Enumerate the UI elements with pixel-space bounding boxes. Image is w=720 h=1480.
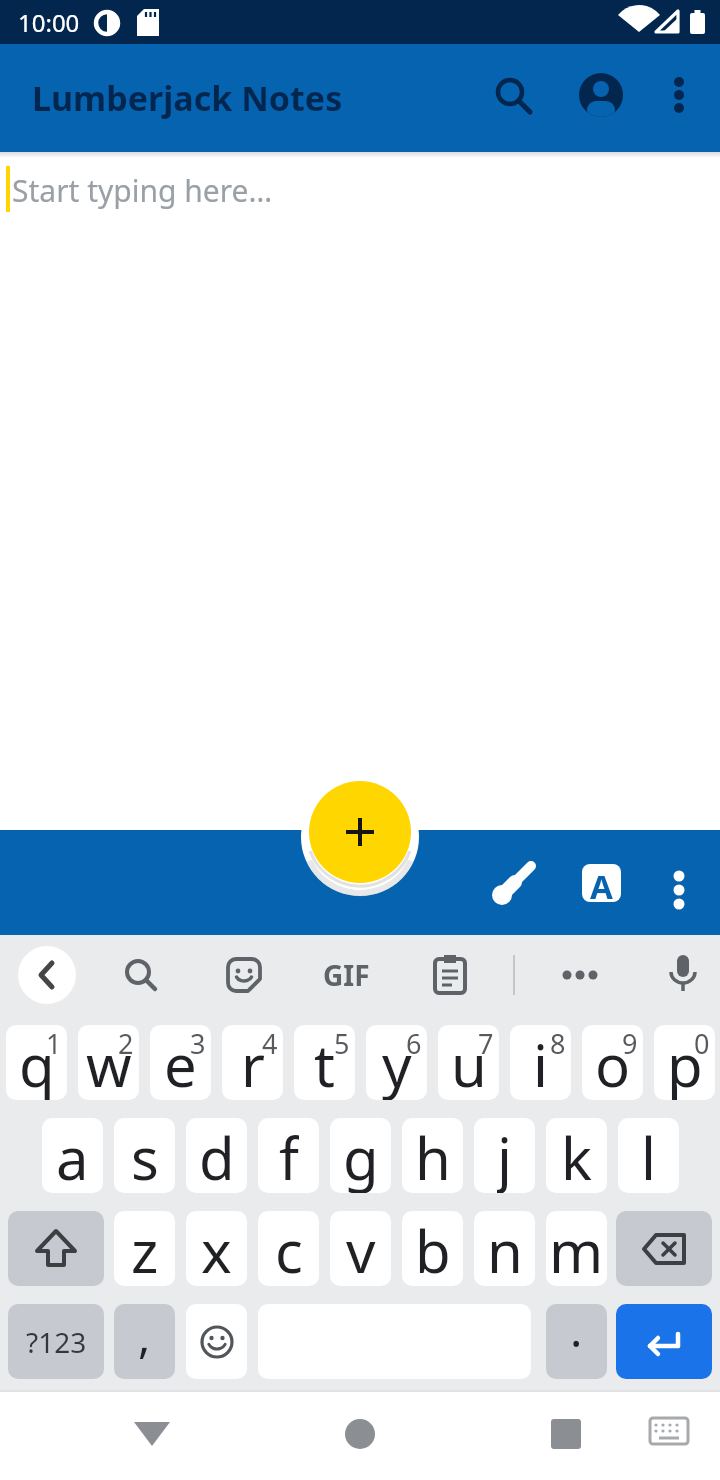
button[interactable]: n	[474, 1211, 535, 1286]
button[interactable]: o	[582, 1025, 643, 1100]
button[interactable]	[655, 71, 703, 119]
button[interactable]: b	[402, 1211, 463, 1286]
button[interactable]: u	[438, 1025, 499, 1100]
button[interactable]: t	[294, 1025, 355, 1100]
button[interactable]: .	[546, 1304, 607, 1379]
button[interactable]: k	[546, 1118, 607, 1193]
staticText: j	[497, 1118, 512, 1193]
button[interactable]	[542, 1412, 590, 1460]
button[interactable]: ?123	[8, 1304, 104, 1379]
button[interactable]	[577, 71, 625, 119]
button[interactable]: r	[222, 1025, 283, 1100]
button[interactable]: s	[114, 1118, 175, 1193]
staticText: s	[131, 1118, 159, 1193]
button[interactable]: z	[114, 1211, 175, 1286]
button[interactable]	[616, 1211, 712, 1286]
staticText: 3	[190, 1025, 206, 1062]
staticText: 0	[694, 1025, 710, 1062]
button[interactable]	[645, 1410, 693, 1458]
staticText: A	[590, 864, 613, 902]
staticText: 10:00	[18, 6, 80, 39]
staticText: 1	[46, 1025, 62, 1062]
staticText: q	[19, 1025, 55, 1100]
staticText: k	[561, 1118, 592, 1193]
button[interactable]	[309, 781, 411, 883]
button[interactable]: f	[258, 1118, 319, 1193]
staticText: b	[415, 1211, 451, 1286]
button[interactable]: p	[654, 1025, 715, 1100]
staticText: 7	[478, 1025, 494, 1062]
button[interactable]: q	[6, 1025, 67, 1100]
staticText: ?123	[26, 1323, 87, 1361]
button[interactable]: A	[582, 864, 621, 902]
button[interactable]: m	[546, 1211, 607, 1286]
button[interactable]: h	[402, 1118, 463, 1193]
staticText: 9	[622, 1025, 638, 1062]
staticText: z	[131, 1211, 159, 1286]
staticText: n	[487, 1211, 523, 1286]
button[interactable]: i	[510, 1025, 571, 1100]
staticText: 4	[262, 1025, 278, 1062]
button[interactable]	[336, 1412, 384, 1460]
button[interactable]: GIF	[316, 951, 376, 999]
staticText: x	[201, 1211, 232, 1286]
staticText: e	[164, 1025, 197, 1100]
button[interactable]	[655, 866, 703, 914]
button[interactable]: j	[474, 1118, 535, 1193]
button[interactable]: c	[258, 1211, 319, 1286]
button[interactable]	[186, 1304, 247, 1379]
staticText: .	[570, 1304, 583, 1361]
staticText: d	[199, 1118, 235, 1193]
staticText: r	[241, 1025, 265, 1100]
button[interactable]: v	[330, 1211, 391, 1286]
button[interactable]	[18, 946, 76, 1004]
button[interactable]	[556, 951, 604, 999]
button[interactable]: y	[366, 1025, 427, 1100]
staticText: o	[595, 1025, 631, 1100]
staticText: m	[549, 1211, 604, 1286]
button[interactable]	[128, 1412, 176, 1460]
staticText: GIF	[323, 956, 370, 994]
button[interactable]: e	[150, 1025, 211, 1100]
button[interactable]: g	[330, 1118, 391, 1193]
button[interactable]	[616, 1304, 712, 1379]
button[interactable]: x	[186, 1211, 247, 1286]
staticText: g	[343, 1118, 379, 1193]
staticText: p	[667, 1025, 703, 1100]
staticText: f	[279, 1118, 299, 1193]
staticText: i	[533, 1025, 548, 1100]
staticText: c	[275, 1211, 303, 1286]
button[interactable]: ,	[114, 1304, 175, 1379]
button[interactable]	[220, 951, 268, 999]
staticText: y	[382, 1025, 412, 1100]
staticText: v	[346, 1211, 376, 1286]
staticText: 6	[406, 1025, 422, 1062]
button[interactable]: d	[186, 1118, 247, 1193]
staticText: h	[415, 1118, 451, 1193]
staticText: w	[86, 1025, 132, 1100]
staticText: t	[314, 1025, 335, 1100]
staticText: 2	[118, 1025, 134, 1062]
button[interactable]	[8, 1211, 104, 1286]
button[interactable]	[659, 951, 707, 999]
staticText: l	[641, 1118, 656, 1193]
staticText: 8	[550, 1025, 566, 1062]
button[interactable]	[489, 860, 537, 908]
button[interactable]	[117, 951, 165, 999]
staticText: Start typing here…	[12, 170, 273, 211]
staticText: ,	[138, 1304, 151, 1367]
button[interactable]: w	[78, 1025, 139, 1100]
button[interactable]: a	[42, 1118, 103, 1193]
staticText: a	[56, 1118, 89, 1193]
button[interactable]	[489, 71, 537, 119]
staticText: u	[451, 1025, 487, 1100]
staticText: 5	[334, 1025, 350, 1062]
button[interactable]: l	[618, 1118, 679, 1193]
button[interactable]	[426, 951, 474, 999]
staticText: Lumberjack Notes	[32, 75, 343, 121]
